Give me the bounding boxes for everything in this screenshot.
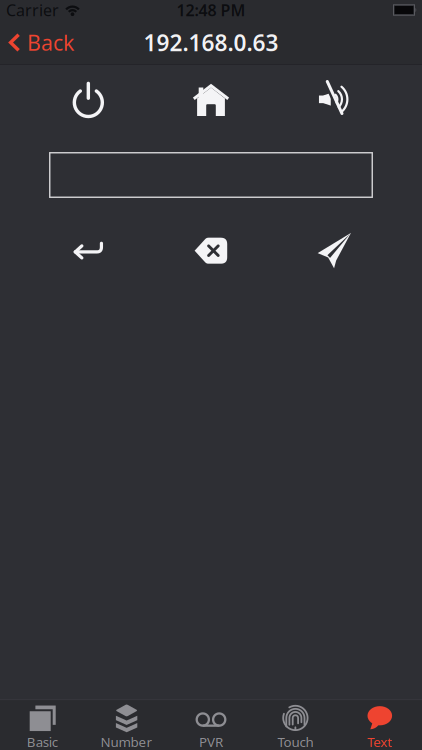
button[interactable]: Basic [0,703,84,750]
staticText: PVR [199,733,223,750]
button[interactable]: Number [84,703,169,750]
staticText: 12:48 PM [176,0,245,21]
button[interactable]: Home [150,78,272,122]
button[interactable]: Text input [49,152,373,198]
button[interactable]: PVR [169,703,253,750]
staticText: 192.168.0.63 [143,27,278,57]
staticText: Back [27,28,74,57]
staticText: Text [367,733,392,750]
button[interactable]: Delete [150,229,272,273]
button[interactable]: Text [338,703,422,750]
button[interactable]: Power [27,78,150,122]
staticText: Touch [277,733,313,750]
button[interactable]: Send [272,229,395,273]
button[interactable]: Mute [272,78,395,122]
button[interactable]: Return [27,229,150,273]
staticText: Number [101,733,153,750]
staticText: Basic [27,733,58,750]
staticText: Carrier [6,0,59,21]
button[interactable]: Back [0,28,74,57]
button[interactable]: Touch [253,703,338,750]
